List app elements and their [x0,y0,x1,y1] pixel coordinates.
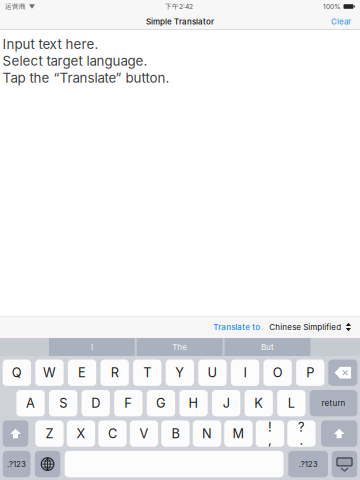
button[interactable]: M [224,420,253,447]
button[interactable]: N [193,420,221,447]
staticText: S [59,395,67,411]
staticText: .?123 [299,459,318,469]
staticText: . [299,432,303,448]
button[interactable]: R [100,359,129,386]
staticText: D [91,395,100,411]
button[interactable]: F [114,390,142,416]
staticText: N [202,426,212,441]
button[interactable] [3,420,28,447]
button[interactable]: U [198,359,227,386]
button[interactable]: T [133,359,161,386]
staticText: K [254,395,263,411]
staticText: A [26,395,35,411]
staticText: 100% [323,2,341,11]
button[interactable]: Z [35,420,64,447]
button[interactable]: Q [3,359,31,386]
staticText: E [78,365,86,380]
staticText: 下午2:42 [165,2,193,11]
button[interactable]: .?123 [3,451,30,477]
button[interactable] [35,451,60,477]
staticText: W [43,365,56,380]
staticText: Select target language. [2,53,147,69]
staticText: Clear [331,17,351,26]
staticText: P [306,365,314,380]
staticText: Q [12,365,22,380]
button[interactable]: P [296,359,324,386]
button[interactable]: H [179,390,208,416]
button[interactable]: Clear [322,13,360,30]
button[interactable]: C [98,420,127,447]
staticText: F [124,395,132,411]
staticText: R [111,365,119,380]
staticText [171,449,177,479]
staticText: M [232,426,244,441]
button[interactable]: I [49,338,135,356]
button[interactable]: E [68,359,96,386]
staticText: I [244,365,247,380]
staticText: C [108,426,117,441]
button[interactable]: The [137,338,223,356]
button[interactable]: return [310,390,357,416]
staticText: The [172,342,187,352]
staticText: 运营商 [5,2,26,11]
staticText: return [322,398,346,408]
button[interactable]: A [16,390,45,416]
button[interactable]: O [263,359,292,386]
button[interactable]: B [161,420,190,447]
button[interactable]: Y [166,359,194,386]
button[interactable]: .?123 [288,451,328,477]
staticText: V [139,426,148,441]
staticText: Y [175,365,184,380]
staticText: , [268,432,272,448]
button[interactable]: I [231,359,259,386]
button[interactable] [332,451,357,477]
staticText: Tap the “Translate” button. [2,70,169,86]
button[interactable]: X [67,420,95,447]
button[interactable]: But [225,338,310,356]
staticText: X [76,426,85,441]
staticText: Z [45,426,53,441]
button[interactable]: L [277,390,305,416]
staticText: B [171,426,179,441]
staticText: Translate to [213,322,260,332]
staticText: ! [268,419,272,435]
button[interactable]: S [49,390,77,416]
staticText: .?123 [7,459,26,469]
staticText: ? [298,419,305,435]
staticText: H [189,395,199,411]
staticText: I [91,342,93,352]
button[interactable]: Chinese Simplified [269,322,351,332]
staticText: Chinese Simplified [269,322,341,332]
button[interactable]: K [245,390,273,416]
button[interactable]: ! [256,420,284,447]
staticText: Simple Translator [146,17,214,26]
button[interactable] [328,359,357,386]
button[interactable]: V [130,420,158,447]
staticText: Input text here. [2,36,98,52]
button[interactable]: D [82,390,110,416]
staticText: J [223,395,230,411]
staticText: L [288,395,295,411]
staticText: But [261,342,274,352]
staticText: U [207,365,217,380]
button[interactable] [321,420,357,447]
button[interactable]: G [147,390,175,416]
button[interactable]: Translate to [213,322,260,332]
staticText: G [156,395,166,411]
button[interactable]: ? [287,420,316,447]
staticText: O [273,365,283,380]
button[interactable]: J [212,390,240,416]
button[interactable]: W [35,359,64,386]
staticText: T [143,365,151,380]
